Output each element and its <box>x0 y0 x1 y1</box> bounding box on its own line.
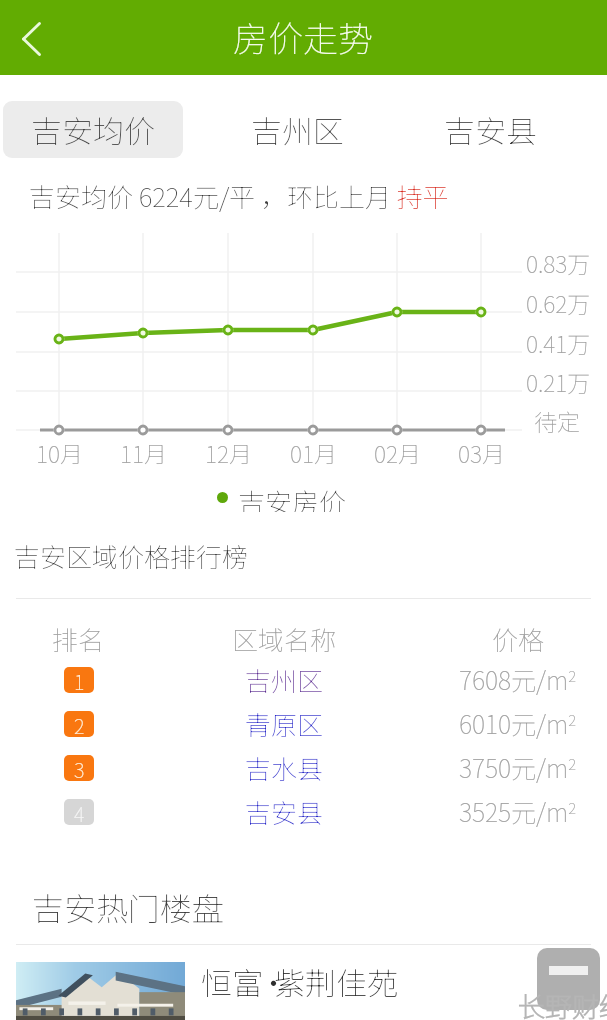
staticText: 0.62万 <box>526 286 591 316</box>
staticText: 吉安均价 6224元/平 ，环比上月 持平 <box>29 177 449 215</box>
button[interactable]: Back <box>5 13 57 65</box>
staticText: · <box>258 959 289 1004</box>
staticText: 6010元/m2 <box>459 705 577 741</box>
button[interactable]: 吉安均价 <box>3 101 183 158</box>
button[interactable] <box>0 790 607 834</box>
staticText: 吉安县 <box>245 793 324 829</box>
staticText: 紫荆佳苑 <box>274 959 398 1004</box>
staticText: 吉安房价 <box>238 482 346 512</box>
staticText: 吉安均价 <box>31 107 155 152</box>
button[interactable] <box>0 746 607 790</box>
button[interactable]: Minimize <box>537 948 600 1010</box>
staticText: 0.21万 <box>526 365 591 395</box>
staticText: 11月 <box>120 436 167 466</box>
staticText: 吉安区域价格排行榜 <box>14 537 249 575</box>
staticText: 吉水县 <box>245 749 324 785</box>
staticText: 10月 <box>36 436 83 466</box>
staticText: 1 <box>74 667 85 693</box>
staticText: 吉州区 <box>245 661 324 697</box>
staticText: 3525元/m2 <box>459 793 577 829</box>
staticText: 价格 <box>492 620 545 652</box>
staticText: 01月 <box>290 436 337 466</box>
staticText: 吉安县 <box>444 107 537 152</box>
staticText: 0.41万 <box>526 326 591 356</box>
staticText: 长野财经 <box>518 986 607 1020</box>
staticText: 房价走势 <box>233 11 374 62</box>
button[interactable]: 吉安房价 <box>217 482 346 512</box>
staticText: 02月 <box>374 436 421 466</box>
staticText: 吉安热门楼盘 <box>32 884 225 930</box>
staticText: 排名 <box>52 620 105 652</box>
staticText: 3750元/m2 <box>459 749 577 785</box>
staticText: 待定 <box>534 404 580 434</box>
staticText: 恒富 <box>201 959 263 1004</box>
staticText: 12月 <box>205 436 252 466</box>
button[interactable]: 吉安县 <box>431 101 549 158</box>
staticText: 3 <box>74 755 85 781</box>
staticText: 青原区 <box>245 705 324 741</box>
staticText: 0.83万 <box>526 246 591 276</box>
staticText: 2 <box>74 711 85 737</box>
button[interactable] <box>0 702 607 746</box>
staticText: 03月 <box>458 436 505 466</box>
staticText: 吉州区 <box>251 107 344 152</box>
staticText: 区域名称 <box>232 620 337 652</box>
staticText: 4 <box>74 799 85 825</box>
button[interactable] <box>0 658 607 702</box>
button[interactable]: 恒富 <box>16 962 591 1020</box>
button[interactable]: 吉州区 <box>238 101 356 158</box>
staticText: 7608元/m2 <box>459 661 577 697</box>
